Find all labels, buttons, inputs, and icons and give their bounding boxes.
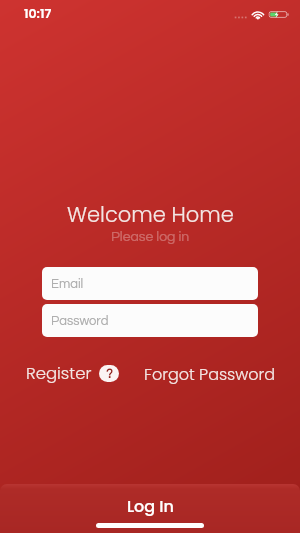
button[interactable]: Forgot Password	[144, 363, 276, 385]
staticText: ?	[106, 367, 113, 380]
button[interactable]: Email	[42, 267, 258, 300]
button[interactable]: Log In	[0, 484, 300, 533]
button[interactable]: Help	[99, 365, 119, 382]
staticText: Email	[51, 277, 84, 290]
staticText: Please log in	[111, 230, 190, 244]
staticText: Log In	[127, 495, 174, 517]
staticText: 10:17	[24, 5, 52, 22]
button[interactable]: Password	[42, 304, 258, 337]
staticText: Password	[51, 314, 109, 327]
button[interactable]: Register	[26, 362, 92, 385]
staticText: Welcome Home	[67, 200, 234, 229]
